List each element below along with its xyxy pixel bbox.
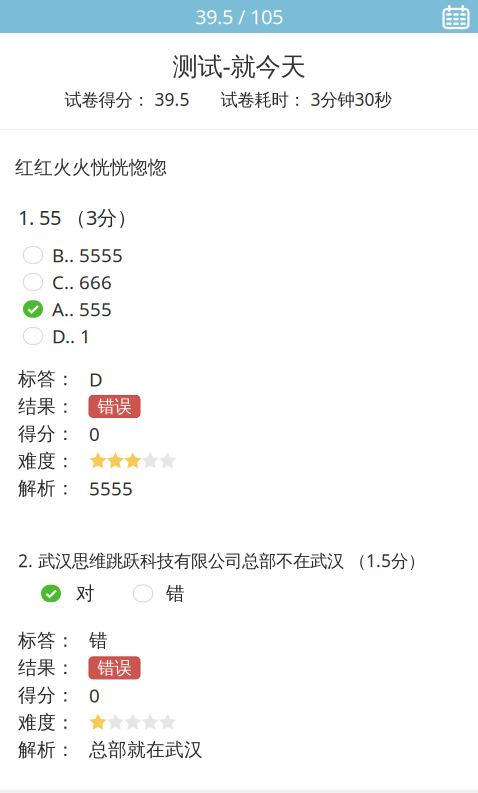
staticText: 39.5 / 105 bbox=[195, 3, 283, 30]
staticText: C.. 666 bbox=[52, 270, 112, 294]
staticText: 解析： bbox=[18, 477, 75, 500]
staticText: 得分： bbox=[18, 684, 75, 707]
staticText: 试卷耗时： 3分钟30秒 bbox=[220, 88, 391, 111]
staticText: 0 bbox=[89, 421, 100, 446]
staticText: 错 bbox=[166, 582, 185, 605]
button[interactable]: B.. 5555 bbox=[0, 241, 478, 268]
staticText: 测试-就今天 bbox=[172, 49, 305, 83]
button[interactable]: A.. 555 bbox=[0, 295, 478, 322]
button[interactable]: C.. 666 bbox=[0, 268, 478, 295]
staticText: 结果： bbox=[18, 395, 75, 418]
staticText: 得分： bbox=[18, 422, 75, 445]
staticText: 0 bbox=[89, 683, 100, 708]
button[interactable]: 错 bbox=[133, 582, 185, 605]
button[interactable]: Answer sheet bbox=[442, 3, 470, 29]
staticText: 标答： bbox=[18, 629, 75, 652]
staticText: 难度： bbox=[18, 711, 75, 734]
staticText: 总部就在武汉 bbox=[89, 738, 203, 761]
staticText: D.. 1 bbox=[52, 324, 91, 348]
staticText: 2. 武汉思维跳跃科技有限公司总部不在武汉 （1.5分） bbox=[18, 549, 425, 572]
staticText: A.. 555 bbox=[52, 297, 112, 321]
staticText: 标答： bbox=[18, 368, 75, 391]
staticText: 错 bbox=[89, 629, 108, 652]
staticText: 错误 bbox=[97, 657, 131, 678]
button[interactable]: 对 bbox=[41, 582, 95, 605]
staticText: 结果： bbox=[18, 656, 75, 679]
button[interactable]: D.. 1 bbox=[0, 322, 478, 349]
staticText: 错误 bbox=[97, 396, 131, 417]
staticText: 试卷得分： 39.5 bbox=[64, 88, 189, 111]
staticText: 红红火火恍恍惚惚 bbox=[15, 156, 167, 179]
staticText: B.. 5555 bbox=[52, 243, 123, 267]
staticText: 对 bbox=[76, 582, 95, 605]
staticText: 解析： bbox=[18, 738, 75, 761]
staticText: 1. 55 （3分） bbox=[18, 204, 137, 230]
staticText: 5555 bbox=[89, 476, 133, 501]
staticText: D bbox=[89, 367, 103, 391]
staticText: 难度： bbox=[18, 450, 75, 472]
